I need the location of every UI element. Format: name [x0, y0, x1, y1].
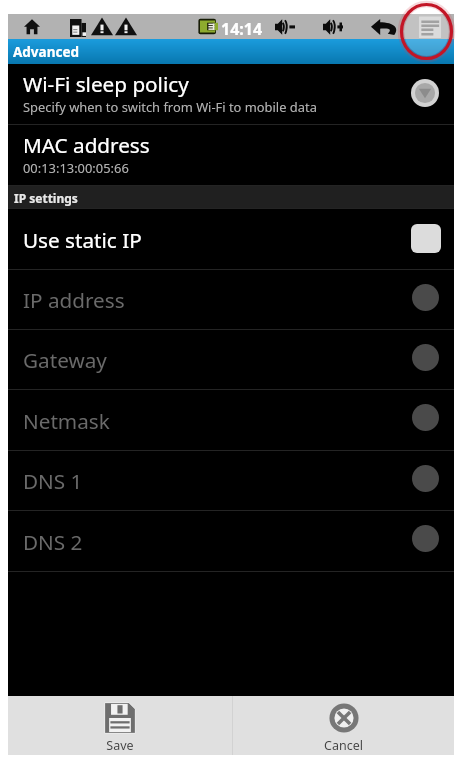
staticText: Advanced	[13, 43, 80, 61]
staticText: IP address	[23, 286, 125, 314]
staticText: Gateway	[23, 346, 107, 374]
button[interactable]: Menu	[418, 14, 442, 39]
button[interactable]: Save	[8, 696, 232, 755]
staticText: DNS 1	[23, 467, 83, 495]
button[interactable]: MAC address	[8, 125, 454, 186]
staticText: Specify when to switch from Wi-Fi to mob…	[23, 98, 317, 116]
staticText: IP settings	[14, 190, 78, 206]
staticText: DNS 2	[23, 528, 83, 556]
button[interactable]: Netmask	[8, 390, 454, 451]
button[interactable]: IP address	[8, 270, 454, 330]
button[interactable]: DNS 2	[8, 511, 454, 572]
button[interactable]: Use static IP	[8, 209, 454, 270]
button[interactable]: Cancel	[233, 696, 454, 755]
staticText: MAC address	[23, 131, 150, 159]
button[interactable]: Wi-Fi sleep policy	[8, 64, 454, 125]
staticText: 00:13:13:00:05:66	[23, 159, 129, 177]
staticText: Wi-Fi sleep policy	[23, 70, 189, 98]
staticText: Netmask	[23, 407, 110, 435]
staticText: Save	[106, 737, 134, 754]
staticText: Use static IP	[23, 226, 142, 254]
staticText: Cancel	[324, 737, 363, 754]
staticText: 14:14	[221, 18, 263, 40]
button[interactable]: Gateway	[8, 330, 454, 390]
button[interactable]: DNS 1	[8, 451, 454, 511]
